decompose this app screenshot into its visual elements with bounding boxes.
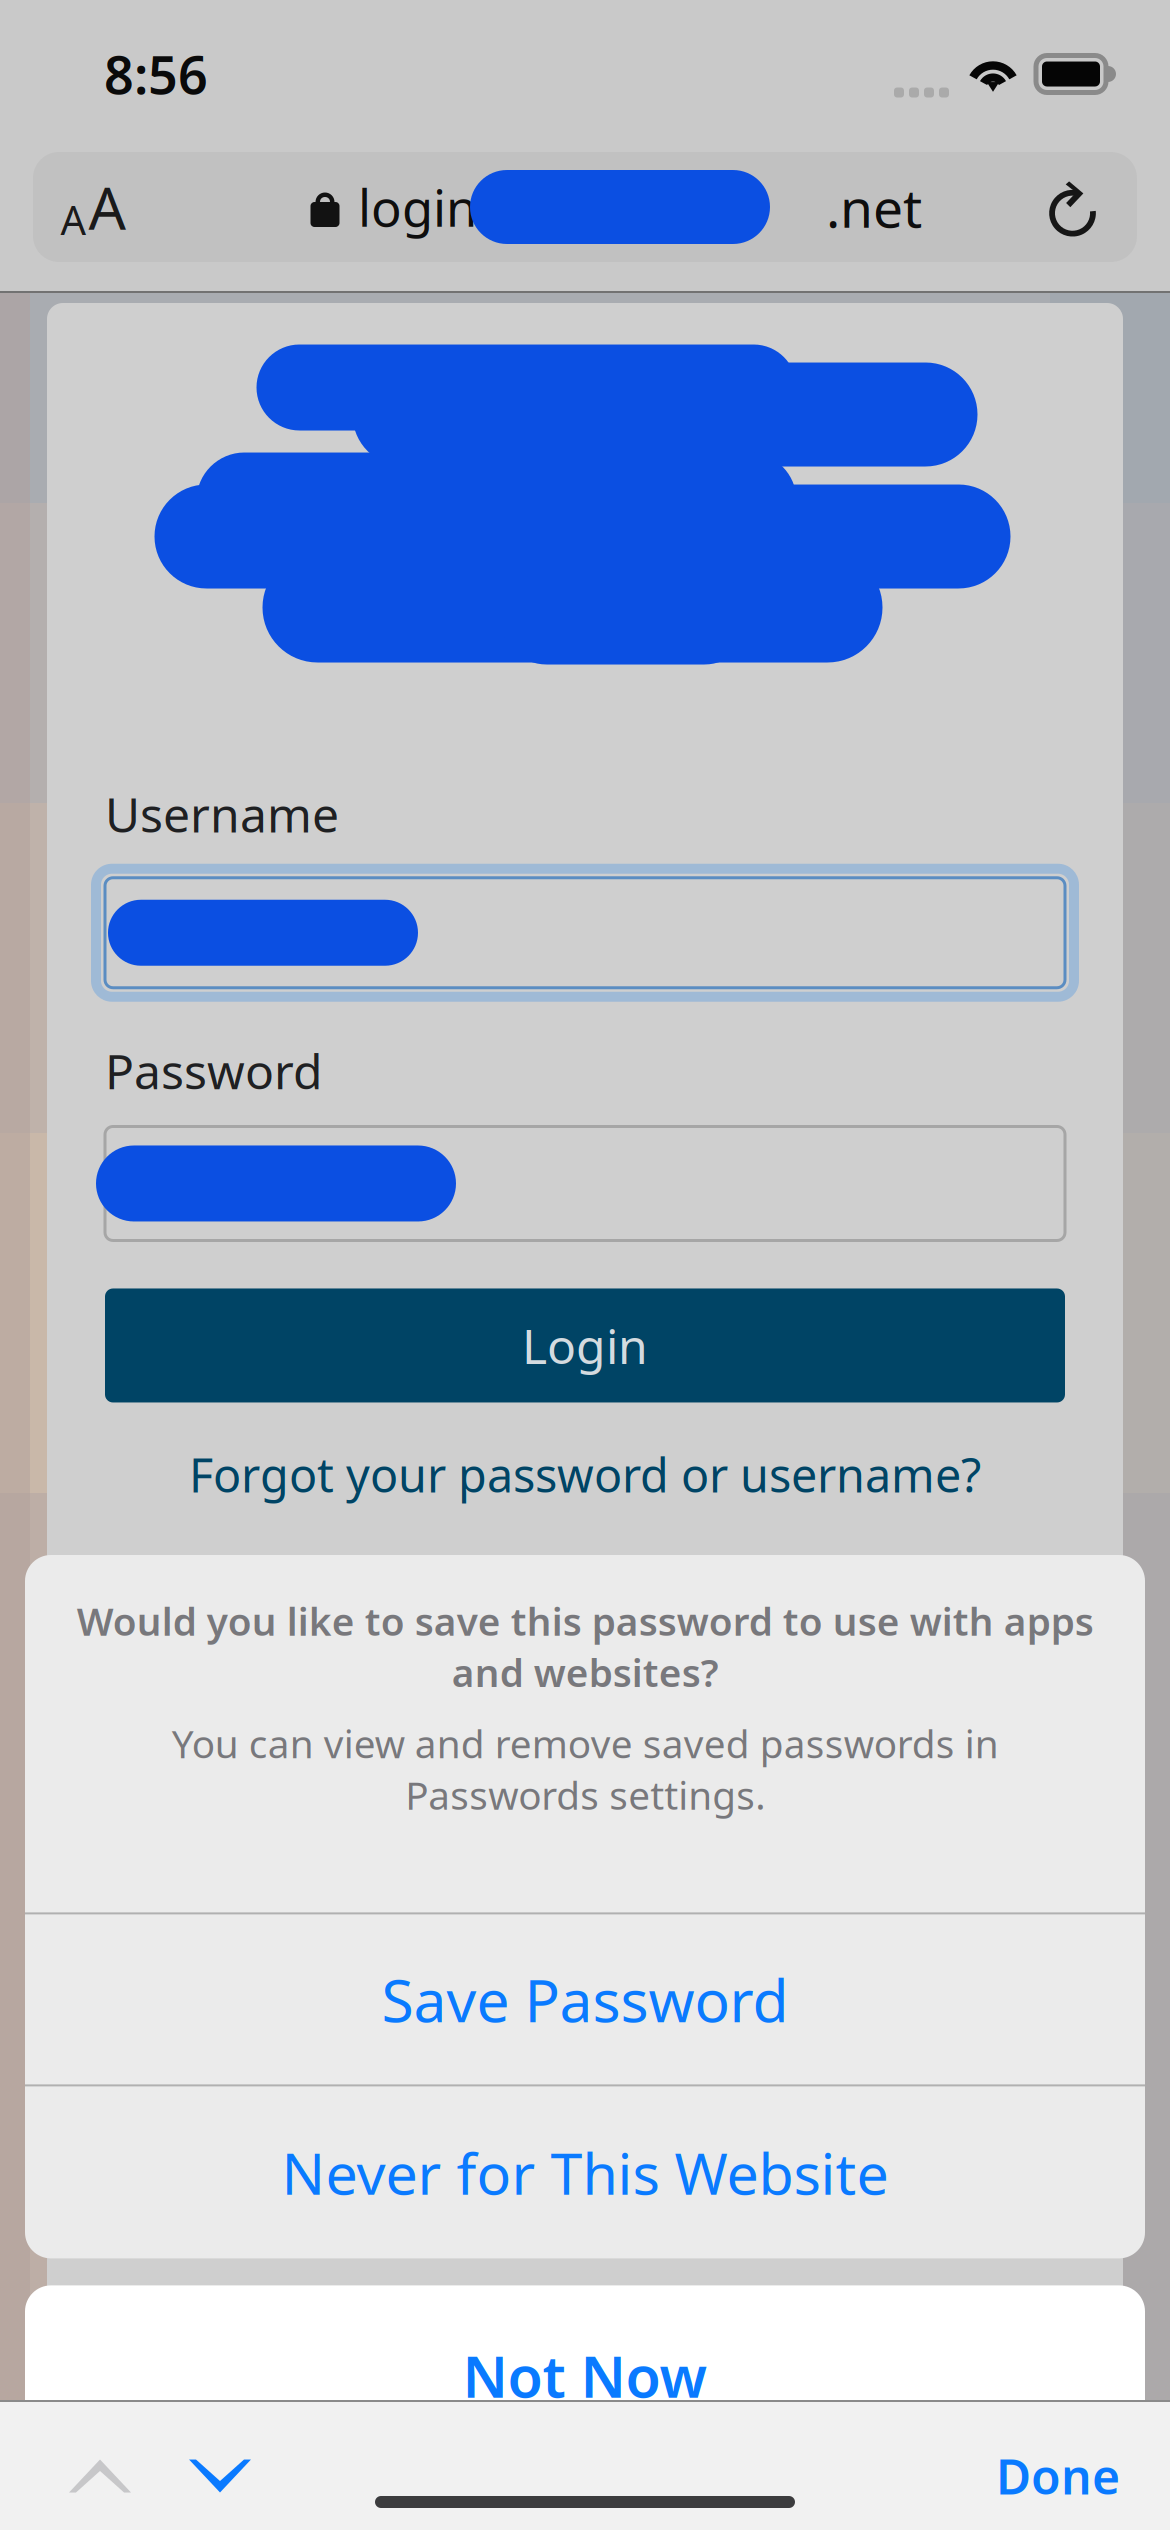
button[interactable]: Page text size: [33, 152, 153, 262]
staticText: Done: [996, 2444, 1120, 2508]
staticText: Password: [105, 1039, 323, 1102]
button[interactable]: Not Now: [25, 2285, 1145, 2465]
button[interactable]: Done: [972, 2428, 1144, 2524]
staticText: Save Password: [381, 1960, 788, 2038]
staticText: login: [358, 173, 477, 241]
staticText: Would you like to save this password to …: [76, 1595, 1093, 1698]
button[interactable]: Login: [105, 1288, 1065, 1402]
staticText: A: [88, 168, 125, 246]
staticText: Forgot your password or username?: [189, 1443, 981, 1505]
staticText: Login: [522, 1314, 648, 1377]
staticText: A: [60, 193, 86, 246]
button[interactable]: Save Password: [25, 1914, 1145, 2084]
button[interactable]: Forgot your password or username?: [47, 1424, 1123, 1524]
button[interactable]: Never for This Website: [25, 2086, 1145, 2258]
staticText: Username: [105, 782, 339, 846]
button[interactable]: Next field: [160, 2428, 280, 2524]
button[interactable]: Reload: [1013, 152, 1137, 262]
staticText: You can view and remove saved passwords …: [171, 1718, 998, 1820]
staticText: Never for This Website: [281, 2134, 888, 2210]
staticText: Not Now: [462, 2337, 707, 2413]
staticText: 8:56: [104, 39, 208, 109]
staticText: .net: [826, 172, 922, 242]
button[interactable]: Previous field: [40, 2428, 160, 2524]
